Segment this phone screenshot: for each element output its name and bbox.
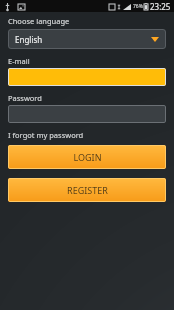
staticText: 76% xyxy=(133,3,143,10)
staticText: REGISTER xyxy=(67,184,108,196)
button[interactable] xyxy=(8,68,166,86)
staticText: LOGIN xyxy=(73,151,102,163)
staticText: E-mail xyxy=(8,56,30,66)
button[interactable]: LOGIN xyxy=(8,145,166,169)
staticText: I forgot my password xyxy=(8,130,84,140)
staticText: Choose language xyxy=(8,16,70,26)
staticText: 23:25 xyxy=(150,1,171,12)
button[interactable]: REGISTER xyxy=(8,178,166,202)
button[interactable] xyxy=(8,105,166,123)
staticText: English xyxy=(15,34,43,45)
staticText: Password xyxy=(8,93,42,103)
button[interactable]: I forgot my password xyxy=(8,130,84,140)
button[interactable]: English xyxy=(8,29,166,49)
